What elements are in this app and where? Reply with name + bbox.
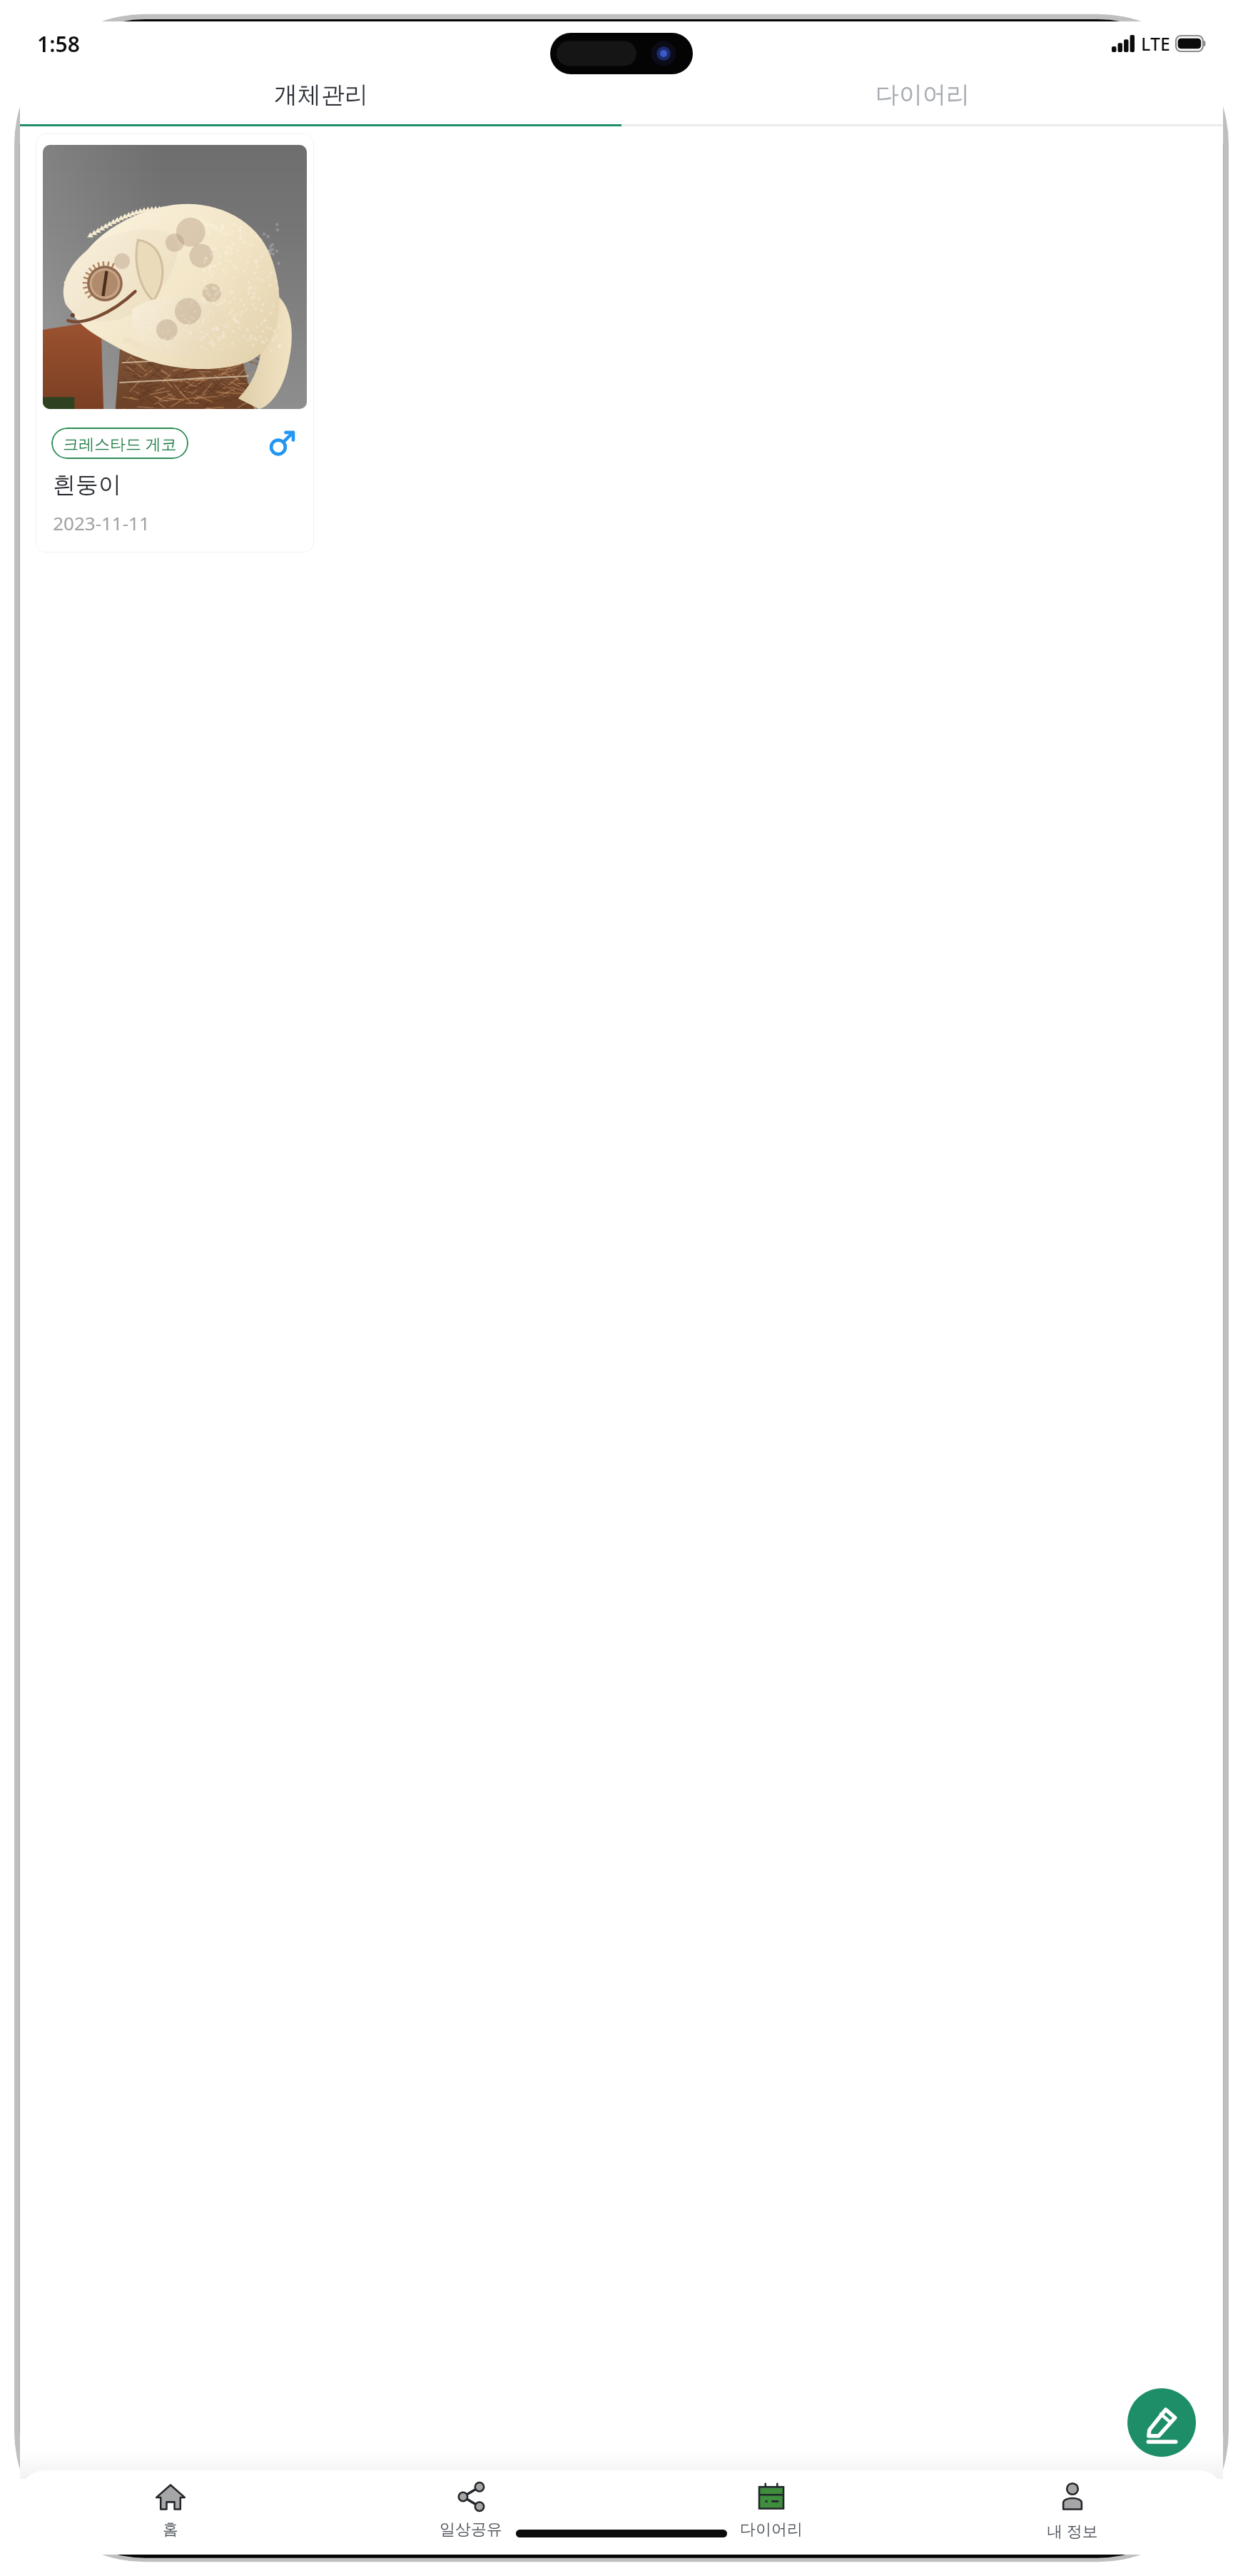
staticText: 개체관리: [274, 80, 368, 110]
staticText: 2023-11-11: [53, 510, 150, 535]
button[interactable]: 개체관리: [20, 66, 621, 124]
staticText: 흰둥이: [53, 470, 121, 499]
button[interactable]: 새 개체 등록: [1127, 2388, 1196, 2457]
button[interactable]: 다이어리: [621, 2480, 922, 2555]
button[interactable]: 다이어리: [621, 66, 1223, 124]
staticText: 일상공유: [440, 2520, 502, 2540]
button[interactable]: 크레스타드 게코: [36, 133, 314, 552]
staticText: 1:58: [37, 29, 80, 59]
staticText: LTE: [1141, 31, 1170, 56]
button[interactable]: 내 정보: [922, 2480, 1223, 2555]
staticText: 홈: [163, 2520, 178, 2540]
staticText: 내 정보: [1047, 2520, 1098, 2541]
staticText: 다이어리: [876, 80, 970, 110]
button[interactable]: 홈: [20, 2480, 320, 2555]
button[interactable]: 일상공유: [320, 2480, 621, 2555]
other: 수컷: [267, 428, 297, 458]
staticText: 크레스타드 게코: [63, 433, 177, 454]
staticText: 다이어리: [740, 2520, 803, 2540]
